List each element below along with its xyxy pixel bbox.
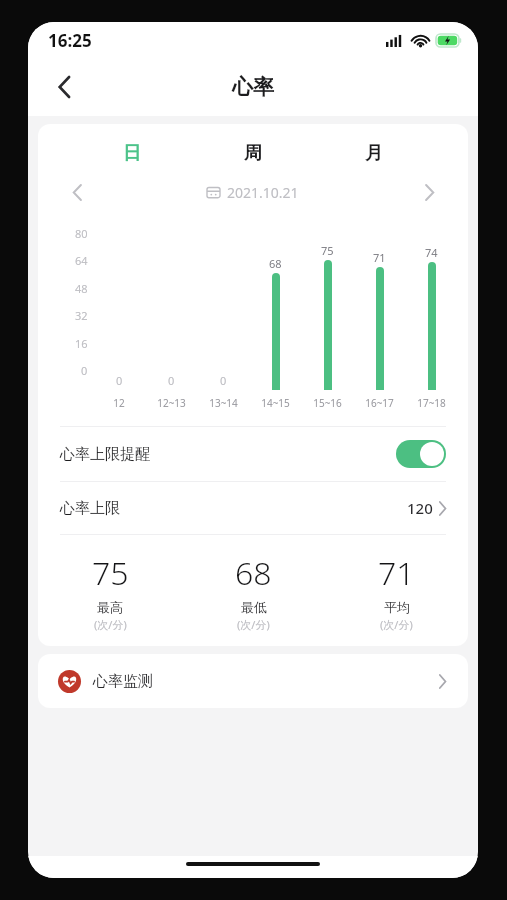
staticText: 16:25 (48, 29, 92, 52)
button[interactable]: 日 (72, 138, 192, 168)
button[interactable]: 心率上限提醒 (38, 427, 468, 481)
staticText: 最低 (241, 599, 267, 615)
staticText: 心率上限 (60, 499, 407, 518)
staticText: 16 (75, 336, 88, 351)
button[interactable]: Heart rate alert toggle (396, 440, 446, 468)
staticText: 68 (235, 551, 272, 595)
staticText: 80 (75, 226, 88, 241)
button[interactable]: Next day (414, 178, 444, 206)
button[interactable]: Previous day (62, 178, 92, 206)
button[interactable]: Back (42, 65, 86, 109)
staticText: 心率 (232, 74, 274, 100)
staticText: 最高 (97, 599, 123, 615)
staticText: 120 (407, 498, 433, 518)
staticText: 13~14 (209, 396, 238, 410)
staticText: 14~15 (261, 396, 290, 410)
button[interactable]: 心率上限 (38, 482, 468, 534)
staticText: 0 (81, 363, 88, 378)
button[interactable]: 月 (313, 138, 434, 168)
staticText: 64 (75, 253, 88, 268)
staticText: (次/分) (94, 617, 127, 632)
staticText: 2021.10.21 (227, 183, 299, 202)
staticText: 48 (75, 281, 88, 296)
staticText: 12~13 (157, 396, 186, 410)
staticText: 15~16 (313, 396, 342, 410)
staticText: 32 (75, 308, 88, 323)
staticText: 17~18 (417, 396, 446, 410)
staticText: 心率监测 (93, 672, 439, 691)
staticText: 0 (220, 373, 227, 388)
staticText: 月 (365, 142, 383, 165)
staticText: 平均 (384, 599, 410, 615)
staticText: 71 (373, 250, 386, 265)
staticText: (次/分) (237, 617, 270, 632)
staticText: 日 (123, 142, 141, 165)
staticText: 16~17 (365, 396, 394, 410)
staticText: 75 (321, 243, 334, 258)
staticText: (次/分) (380, 617, 413, 632)
staticText: 0 (168, 373, 175, 388)
staticText: 71 (378, 551, 415, 595)
button[interactable]: 心率监测 (38, 654, 468, 708)
staticText: 心率上限提醒 (60, 445, 396, 464)
staticText: 75 (92, 551, 129, 595)
staticText: 68 (269, 256, 282, 271)
staticText: 12 (113, 396, 125, 410)
staticText: 74 (425, 245, 438, 260)
staticText: 周 (244, 142, 262, 165)
button[interactable]: 周 (192, 138, 313, 168)
staticText: 0 (116, 373, 123, 388)
